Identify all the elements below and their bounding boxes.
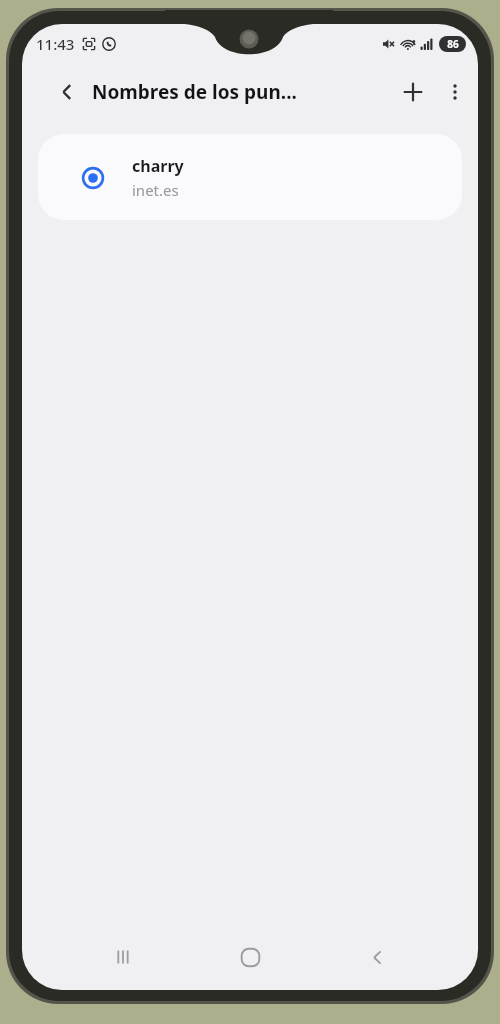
staticText: 86 (447, 37, 459, 51)
button[interactable]: Back (354, 934, 400, 980)
staticText: inet.es (132, 180, 179, 200)
staticText: 11:43 (36, 34, 75, 54)
button[interactable]: Home (227, 934, 273, 980)
button[interactable]: charry (38, 134, 462, 220)
staticText: Nombres de los pun... (92, 79, 297, 105)
button[interactable]: More options (434, 71, 476, 113)
button[interactable]: Add (392, 71, 434, 113)
button[interactable]: Back (46, 71, 88, 113)
staticText: charry (132, 155, 184, 177)
button[interactable]: Recents (100, 934, 146, 980)
